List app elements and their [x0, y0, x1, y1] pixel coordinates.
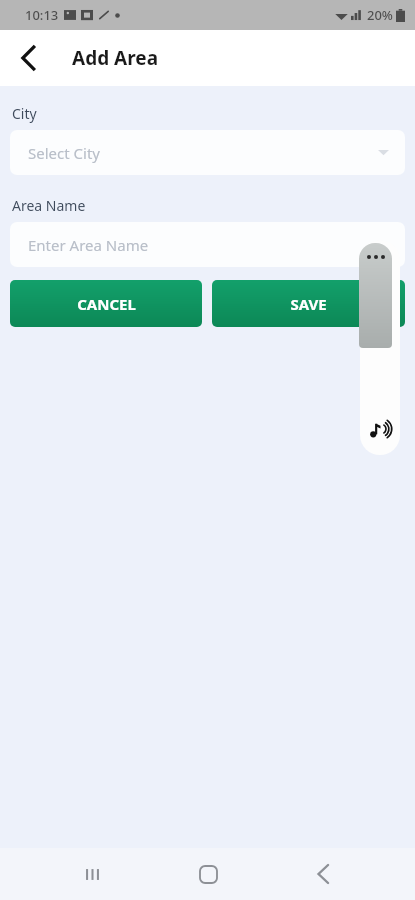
staticText: Area Name	[12, 196, 86, 215]
staticText: Select City	[28, 143, 100, 163]
button[interactable]: SAVE	[212, 280, 405, 327]
button[interactable]: Panel handle	[359, 243, 392, 348]
button[interactable]: CANCEL	[10, 280, 202, 327]
staticText: Add Area	[72, 45, 159, 71]
button[interactable]: Music panel	[360, 240, 400, 455]
staticText: 10:13	[25, 6, 59, 24]
staticText: SAVE	[290, 294, 327, 314]
button[interactable]: Enter Area Name	[10, 222, 405, 267]
button[interactable]: Back	[8, 38, 48, 78]
staticText: 20%	[367, 6, 393, 24]
button[interactable]: Select City	[10, 130, 405, 175]
staticText: Enter Area Name	[28, 235, 149, 255]
button[interactable]: Recent apps	[68, 850, 116, 898]
button[interactable]: Back	[299, 850, 347, 898]
button[interactable]: Home	[184, 850, 232, 898]
staticText: City	[12, 104, 37, 123]
staticText: CANCEL	[77, 294, 136, 314]
